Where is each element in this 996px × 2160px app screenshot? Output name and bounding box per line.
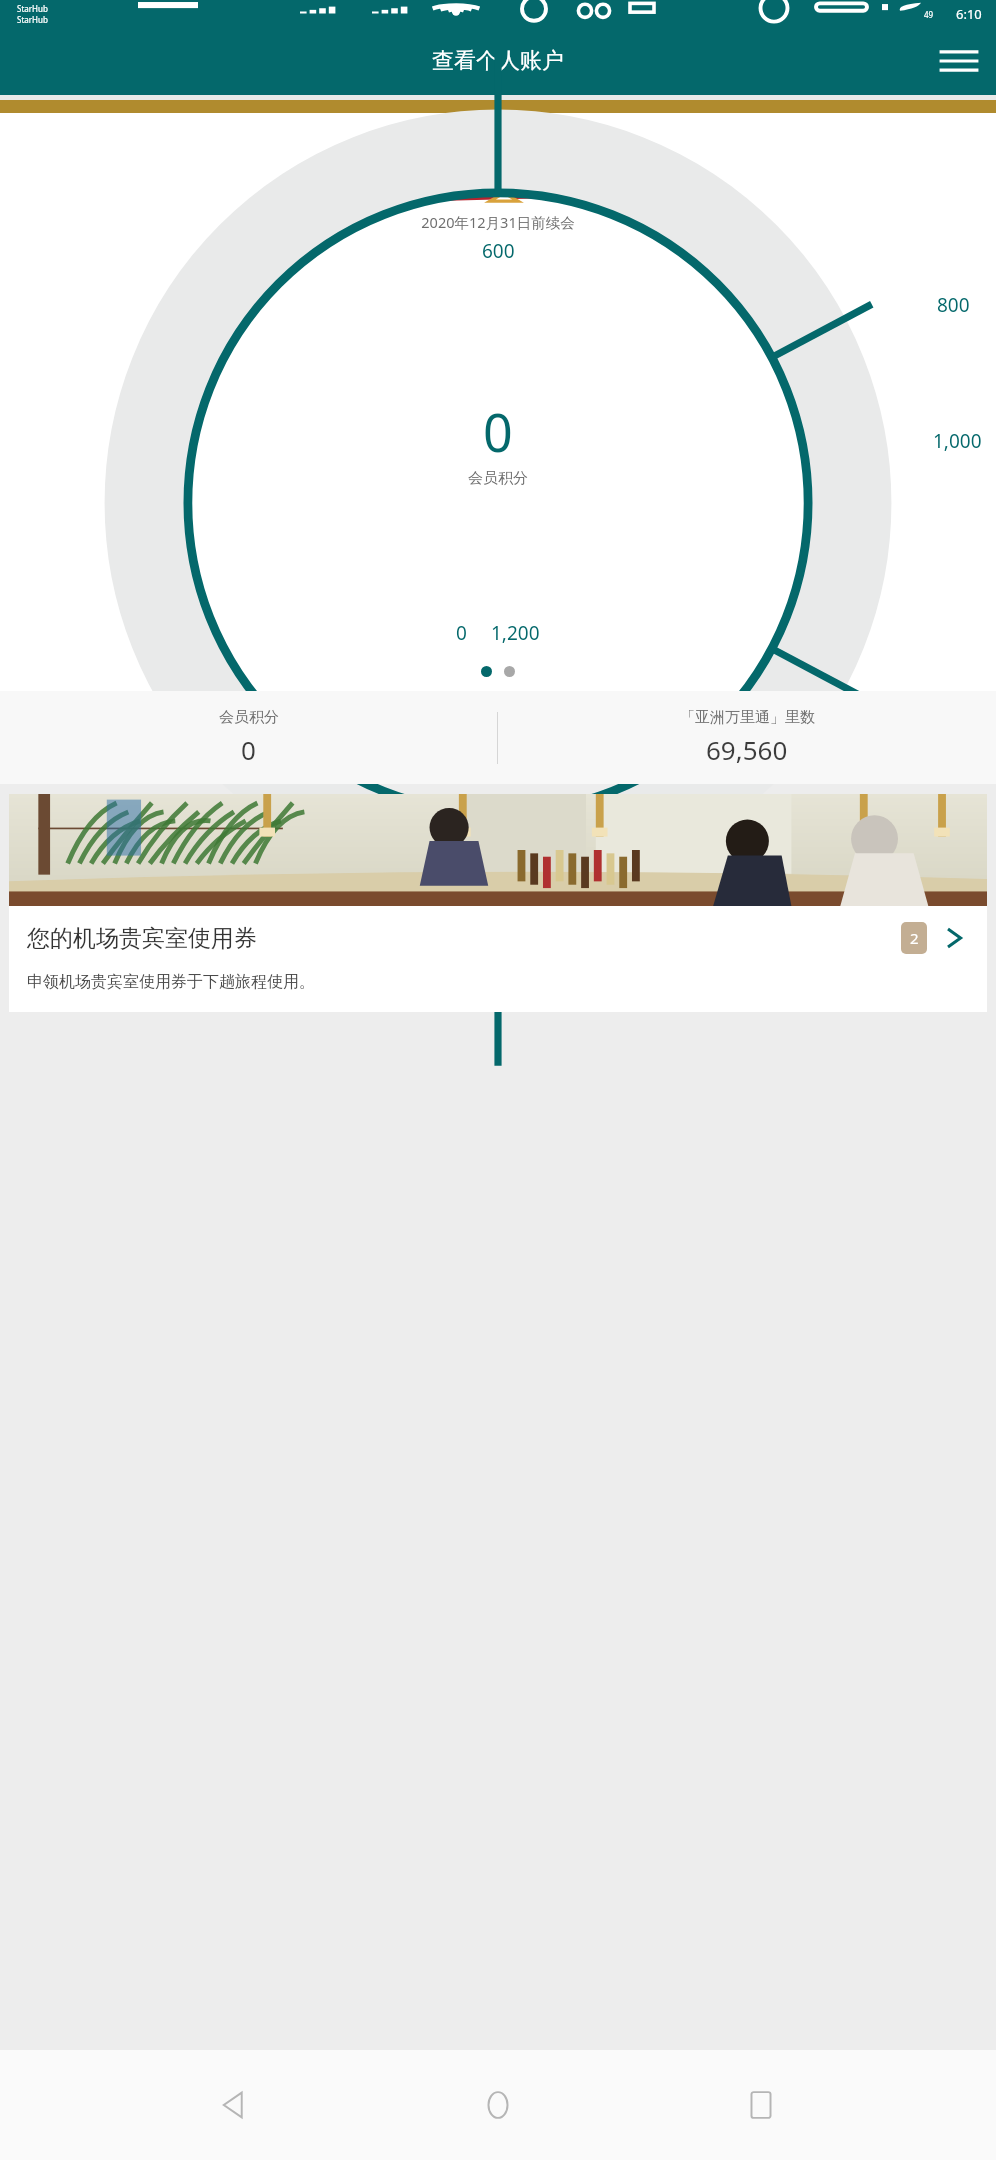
staticText: 6:10 xyxy=(956,5,982,23)
staticText: 查看个人账户 xyxy=(432,47,564,75)
staticText: 会员积分 xyxy=(219,708,279,727)
staticText: 1,000 xyxy=(933,428,982,454)
staticText: 800 xyxy=(937,292,970,318)
button[interactable]: Home xyxy=(470,2077,526,2133)
other: Open xyxy=(939,923,969,953)
staticText: 69,560 xyxy=(706,732,788,767)
staticText: 600 xyxy=(482,238,515,264)
staticText: 「亚洲万里通」里数 xyxy=(680,708,815,727)
button[interactable]: Back xyxy=(207,2077,263,2133)
staticText: 2 xyxy=(910,928,919,948)
button[interactable] xyxy=(504,666,515,677)
staticText: 申领机场贵宾室使用券于下趟旅程使用。 xyxy=(27,972,315,992)
staticText: 0 xyxy=(456,620,467,646)
staticText: 0 xyxy=(241,732,256,767)
button[interactable]: 您的机场贵宾室使用券 xyxy=(9,794,987,1012)
button[interactable]: Menu xyxy=(932,34,986,88)
staticText: StarHub xyxy=(17,3,48,14)
staticText: 金卡 xyxy=(0,125,996,142)
staticText: 49 xyxy=(924,9,934,20)
button[interactable]: Recents xyxy=(733,2077,789,2133)
staticText: 1,200 xyxy=(491,620,540,646)
staticText: 2020年12月31日前续会 xyxy=(0,212,996,232)
staticText: 0 xyxy=(483,396,513,467)
staticText: 会员积分 xyxy=(468,469,528,488)
staticText: StarHub xyxy=(17,14,48,25)
button[interactable] xyxy=(481,666,492,677)
staticText: 您的机场贵宾室使用券 xyxy=(27,924,901,953)
